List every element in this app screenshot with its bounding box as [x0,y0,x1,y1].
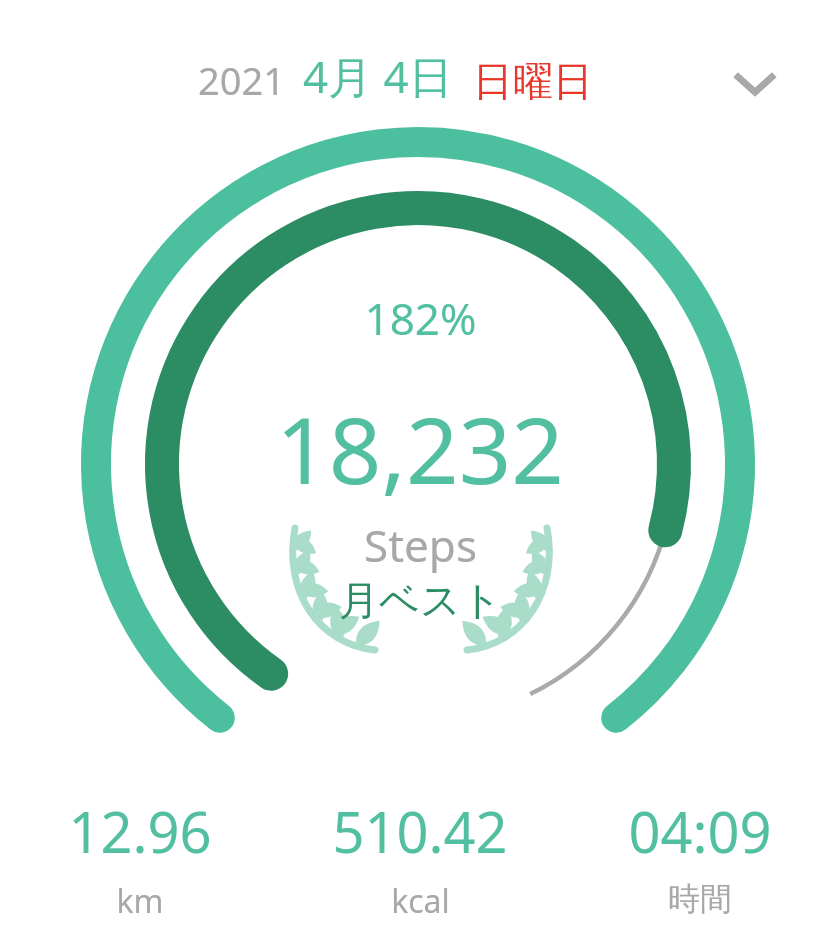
staticText: Steps [364,515,477,575]
staticText: 月ベスト [339,575,502,625]
button[interactable]: Expand date selector [710,38,800,128]
button[interactable]: 2021 [198,46,593,106]
staticText: 510.42 [332,793,508,869]
staticText: km [116,879,164,923]
staticText: 日曜日 [473,56,593,106]
button[interactable]: 04:09 [560,793,840,919]
staticText: 12.96 [68,793,212,869]
staticText: 2021 [198,54,285,106]
staticText: 時間 [668,879,732,919]
staticText: 04:09 [628,793,772,869]
staticText: 18,232 [276,386,564,511]
staticText: kcal [391,879,450,923]
button[interactable]: 510.42 [280,793,560,923]
button[interactable]: 12.96 [0,793,280,923]
staticText: 4月 4日 [303,46,453,106]
button[interactable]: Daily step progress ring [0,0,840,936]
staticText: 182% [364,288,477,348]
